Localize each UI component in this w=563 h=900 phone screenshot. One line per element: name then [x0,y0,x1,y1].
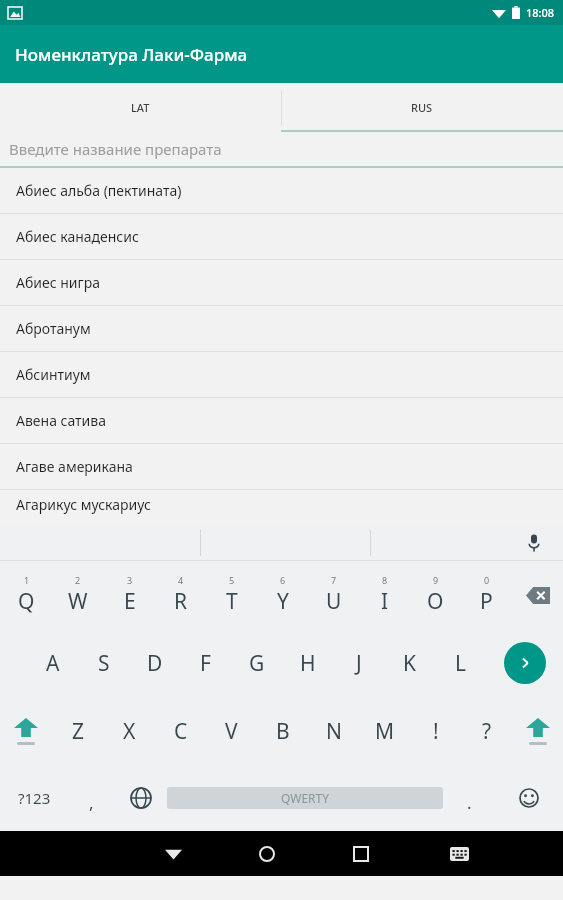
button[interactable]: M [359,697,410,765]
staticText: C [174,717,188,746]
staticText: F [200,649,211,678]
staticText: 0 [484,574,490,586]
staticText: QWERTY [281,790,330,806]
button[interactable]: S [78,629,129,697]
staticText: Агаве американа [16,457,133,476]
staticText: K [403,649,416,678]
button[interactable]: Shift [512,697,563,765]
button[interactable]: Emoji [495,765,563,831]
staticText: Абиес канаденсис [16,227,139,246]
staticText: A [46,649,60,678]
button[interactable]: Voice input [521,530,547,556]
staticText: 8 [382,574,388,586]
staticText: 18:08 [526,5,555,20]
staticText: U [326,587,342,616]
button[interactable]: A [27,629,78,697]
staticText: I [381,587,389,616]
staticText: . [467,791,472,814]
button[interactable]: QWERTY [167,765,443,831]
staticText: V [225,717,238,746]
staticText: , [89,791,94,814]
button[interactable]: Backspace [512,561,563,629]
staticText: P [480,587,493,616]
button[interactable]: 3 [104,561,155,629]
button[interactable]: G [231,629,282,697]
button[interactable]: Back [126,831,220,876]
staticText: X [123,717,136,746]
staticText: 4 [178,574,184,586]
button[interactable]: LAT [0,83,281,132]
button[interactable]: 1 [0,561,52,629]
staticText: 1 [24,574,30,586]
button[interactable]: . [443,765,495,831]
button[interactable]: Авена сатива [0,398,563,444]
button[interactable]: Агарикус мускариус [0,490,563,518]
button[interactable]: B [257,697,308,765]
staticText: J [356,649,362,678]
staticText: 3 [127,574,133,586]
button[interactable]: 6 [257,561,308,629]
staticText: H [300,649,316,678]
button[interactable]: Keyboard [408,831,511,876]
button[interactable]: , [68,765,115,831]
staticText: Абсинтиум [16,365,91,384]
button[interactable]: Shift [0,697,52,765]
button[interactable]: Абротанум [0,306,563,352]
button[interactable]: Введите название препарата [0,132,563,166]
button[interactable]: 4 [155,561,206,629]
button[interactable]: 9 [410,561,461,629]
staticText: Q [18,587,35,616]
staticText: 2 [75,574,81,586]
staticText: D [147,649,163,678]
button[interactable]: Абиес канаденсис [0,214,563,260]
staticText: Y [277,587,289,616]
staticText: B [276,717,290,746]
button[interactable]: Recent apps [314,831,408,876]
staticText: RUS [411,100,433,115]
staticText: Агарикус мускариус [16,495,151,514]
staticText: Абиес альба (пектината) [16,181,182,200]
button[interactable]: Агаве американа [0,444,563,490]
staticText: Z [72,717,85,746]
button[interactable]: Z [52,697,104,765]
button[interactable]: Home [220,831,314,876]
button[interactable]: J [333,629,384,697]
button[interactable]: 7 [308,561,359,629]
staticText: M [375,717,395,746]
button[interactable]: Change language [115,765,167,831]
button[interactable]: Абиес нигра [0,260,563,306]
staticText: ?123 [18,788,51,808]
button[interactable]: Go [486,629,563,697]
staticText: ! [433,717,439,746]
button[interactable]: 0 [461,561,512,629]
button[interactable]: K [384,629,435,697]
staticText: W [68,587,88,616]
button[interactable]: ? [461,697,512,765]
staticText: Авена сатива [16,411,106,430]
button[interactable]: Абсинтиум [0,352,563,398]
button[interactable]: 8 [359,561,410,629]
button[interactable]: ?123 [0,765,68,831]
button[interactable]: X [104,697,155,765]
button[interactable]: F [180,629,231,697]
button[interactable]: 2 [52,561,104,629]
button[interactable]: RUS [281,83,563,132]
button[interactable]: H [282,629,333,697]
button[interactable]: D [129,629,180,697]
button[interactable]: C [155,697,206,765]
staticText: Абротанум [16,319,91,338]
staticText: 5 [229,574,235,586]
staticText: Номенклатура Лаки-Фарма [15,43,248,66]
button[interactable]: ! [410,697,461,765]
staticText: E [124,587,136,616]
staticText: LAT [131,100,150,115]
staticText: Абиес нигра [16,273,100,292]
button[interactable]: L [435,629,486,697]
staticText: O [427,587,444,616]
button[interactable]: N [308,697,359,765]
staticText: G [249,649,265,678]
staticText: 6 [280,574,286,586]
button[interactable]: Абиес альба (пектината) [0,168,563,214]
button[interactable]: 5 [206,561,257,629]
button[interactable]: V [206,697,257,765]
